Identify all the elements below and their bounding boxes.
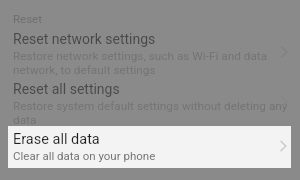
staticText: Clear all data on your phone	[13, 149, 156, 162]
button[interactable]: Erase all data	[8, 126, 291, 168]
button[interactable]: Reset all settings	[0, 78, 300, 126]
other: Open	[277, 139, 291, 153]
staticText: Erase all data	[13, 131, 100, 148]
other: Open	[278, 95, 292, 109]
staticText: Restore system default settings without …	[13, 99, 288, 127]
staticText: Reset network settings	[13, 31, 156, 47]
staticText: Restore network settings, such as Wi-Fi …	[13, 49, 268, 77]
staticText: Reset	[13, 12, 42, 25]
button[interactable]: Reset network settings	[0, 28, 300, 76]
staticText: Reset all settings	[13, 81, 120, 97]
